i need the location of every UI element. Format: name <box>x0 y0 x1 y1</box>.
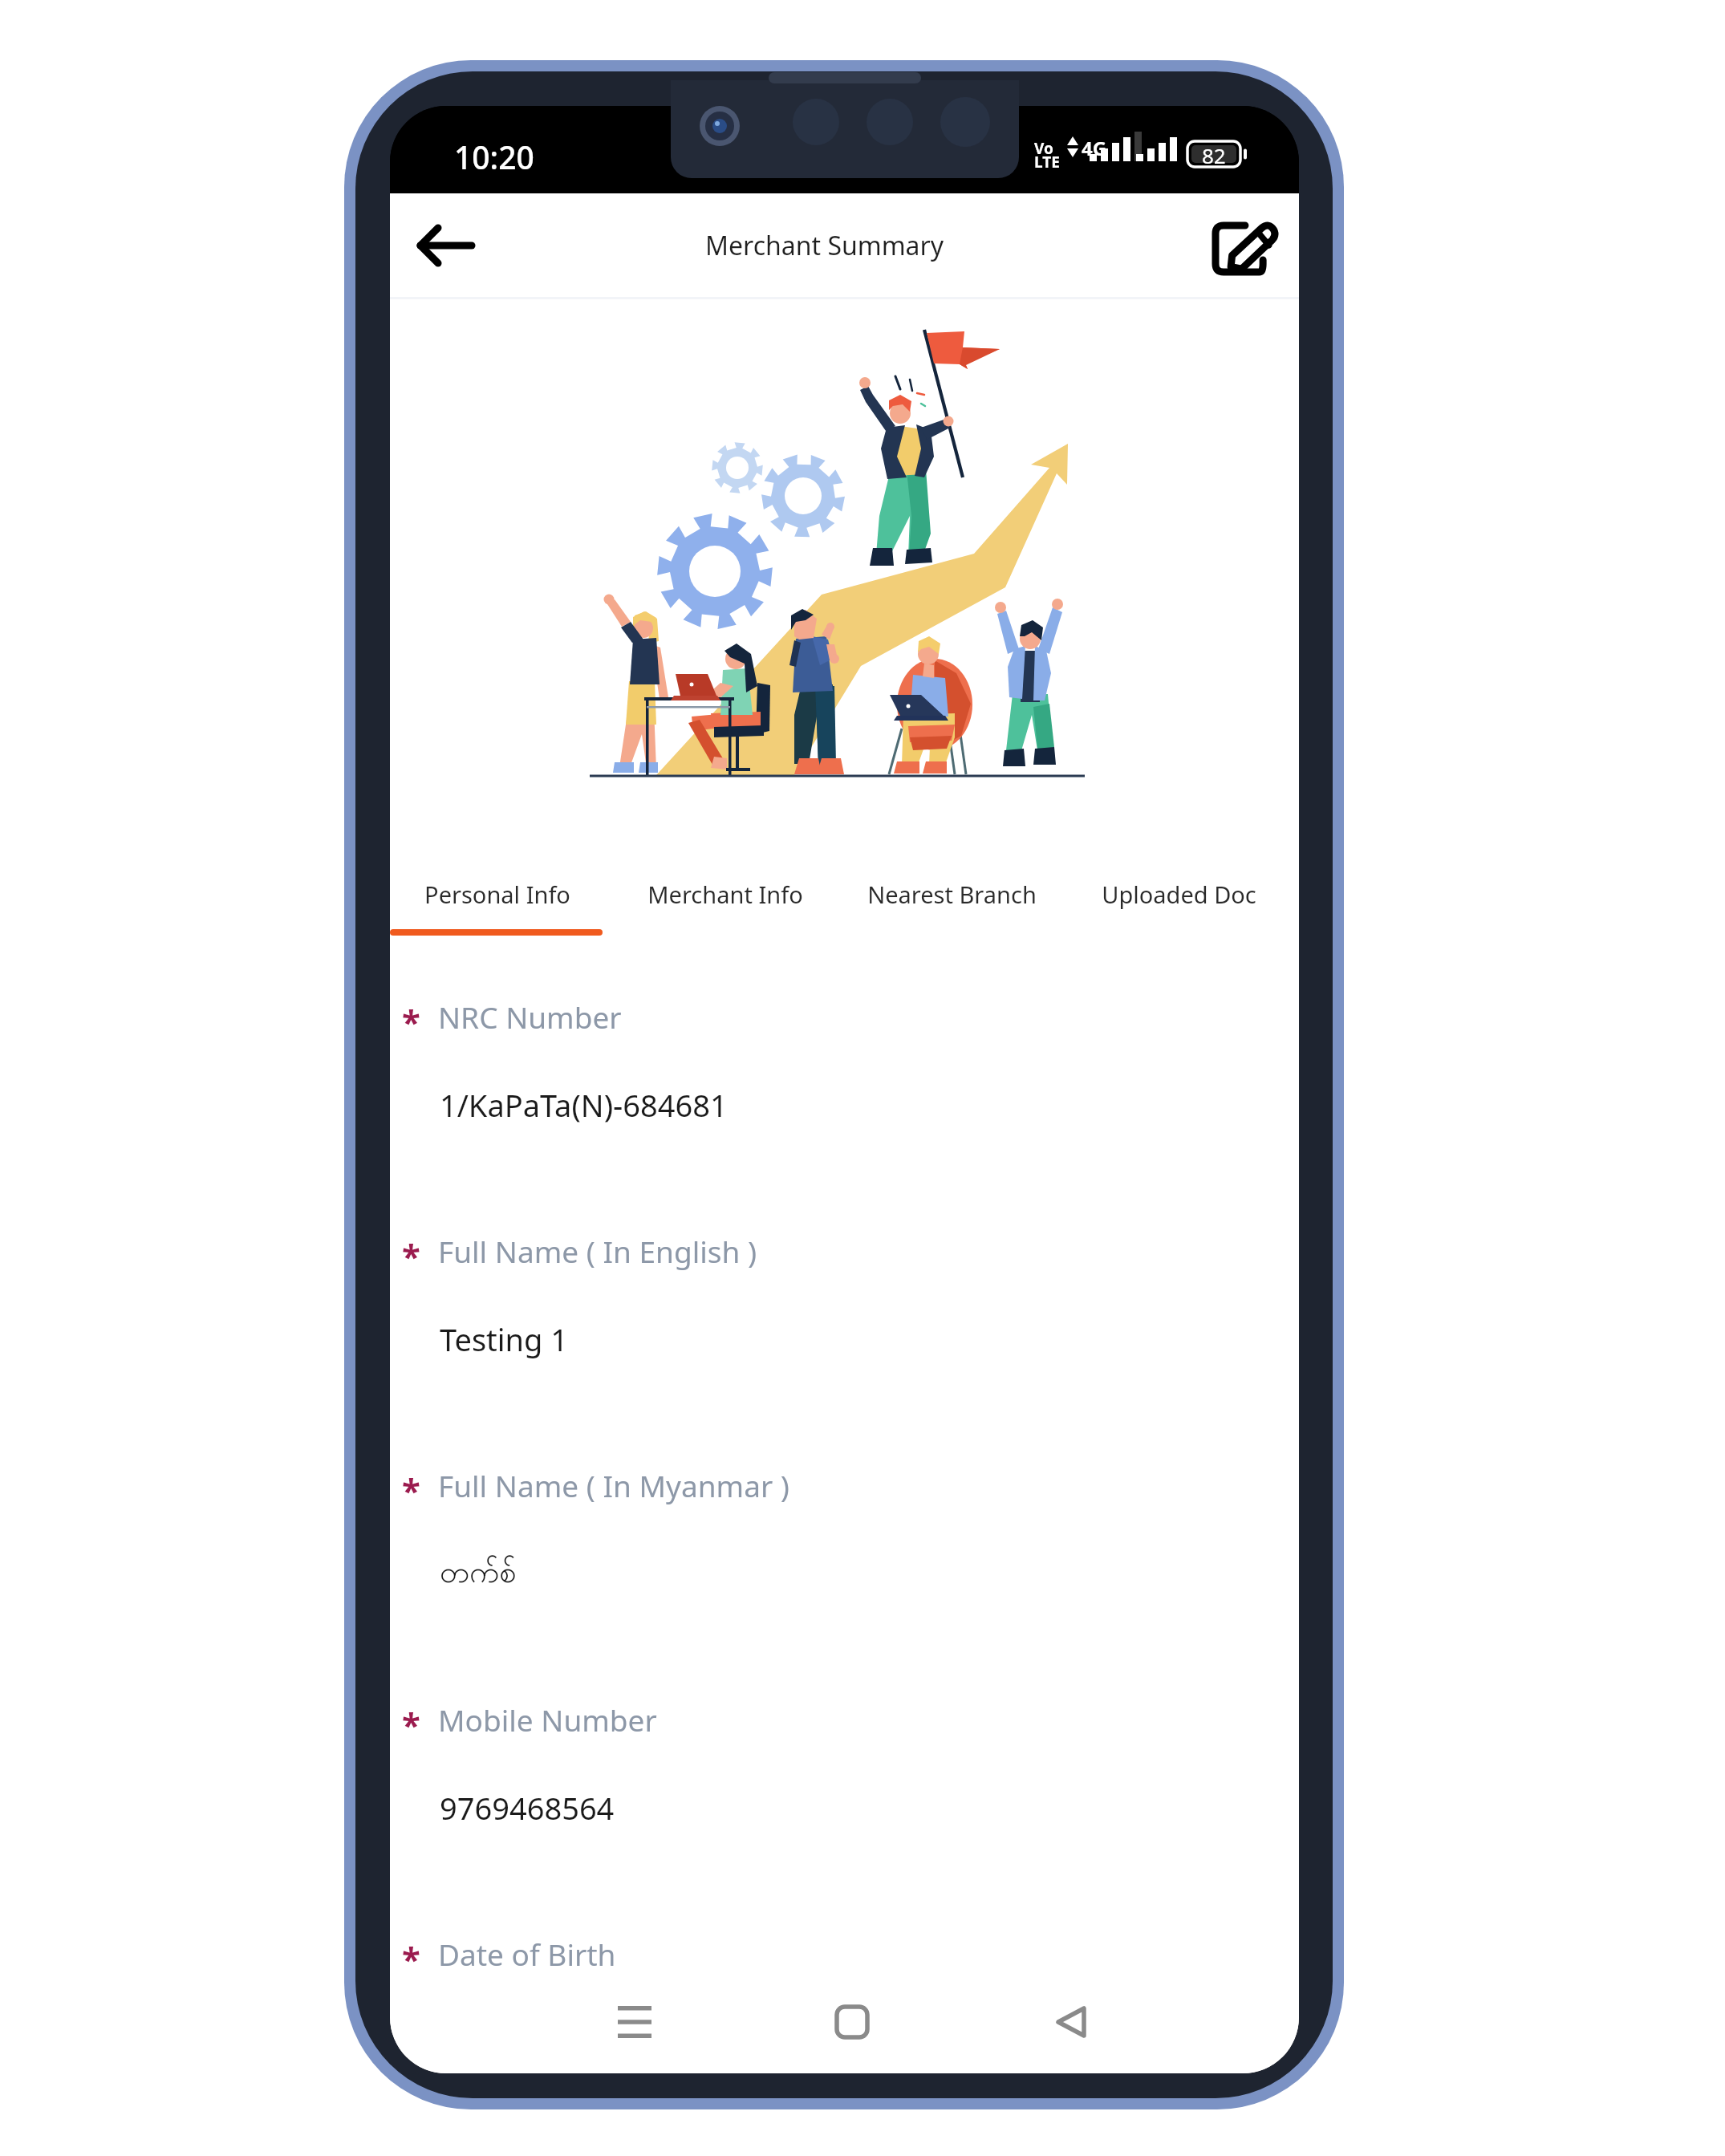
staticText: Uploaded Doc <box>1102 879 1256 910</box>
staticText: Full Name ( In English ) <box>438 1231 757 1271</box>
staticText: NRC Number <box>438 997 622 1037</box>
staticText: Date of Birth <box>438 1934 616 1974</box>
staticText: Full Name ( In Myanmar ) <box>438 1465 789 1505</box>
staticText: * <box>402 1467 420 1512</box>
staticText: Nearest Branch <box>867 879 1037 910</box>
staticText: * <box>402 1232 420 1278</box>
button[interactable]: * <box>390 1465 1299 1699</box>
staticText: Personal Info <box>424 879 570 910</box>
staticText: Vo <box>1034 138 1053 159</box>
staticText: 9769468564 <box>440 1787 615 1829</box>
button[interactable]: Uploaded Doc <box>1072 864 1299 924</box>
staticText: Mobile Number <box>438 1699 657 1740</box>
staticText: တက်စ် <box>440 1553 517 1598</box>
button[interactable]: Home <box>808 1978 896 2066</box>
staticText: LTE <box>1034 152 1060 173</box>
staticText: 10:20 <box>454 136 534 178</box>
button[interactable]: Edit <box>1196 201 1285 290</box>
staticText: * <box>402 1935 420 1981</box>
button[interactable]: * <box>390 997 1299 1231</box>
button[interactable]: * <box>390 1699 1299 1934</box>
button[interactable]: Nearest Branch <box>845 864 1072 924</box>
button[interactable]: Menu <box>591 1978 679 2066</box>
staticText: 4G <box>1082 135 1107 161</box>
staticText: * <box>402 998 420 1044</box>
button[interactable]: Personal Info <box>390 864 618 924</box>
button[interactable]: * <box>390 1934 1299 2073</box>
staticText: * <box>402 1701 420 1747</box>
button[interactable]: * <box>390 1231 1299 1465</box>
staticText: Testing 1 <box>440 1318 569 1360</box>
button[interactable]: Back <box>401 201 489 290</box>
staticText: Merchant Summary <box>705 228 944 263</box>
staticText: 82 <box>1202 141 1226 167</box>
button[interactable]: Back <box>1027 1978 1115 2066</box>
button[interactable]: Merchant Info <box>618 864 845 924</box>
staticText: 1/KaPaTa(N)-684681 <box>440 1084 728 1126</box>
staticText: Merchant Info <box>647 879 803 910</box>
